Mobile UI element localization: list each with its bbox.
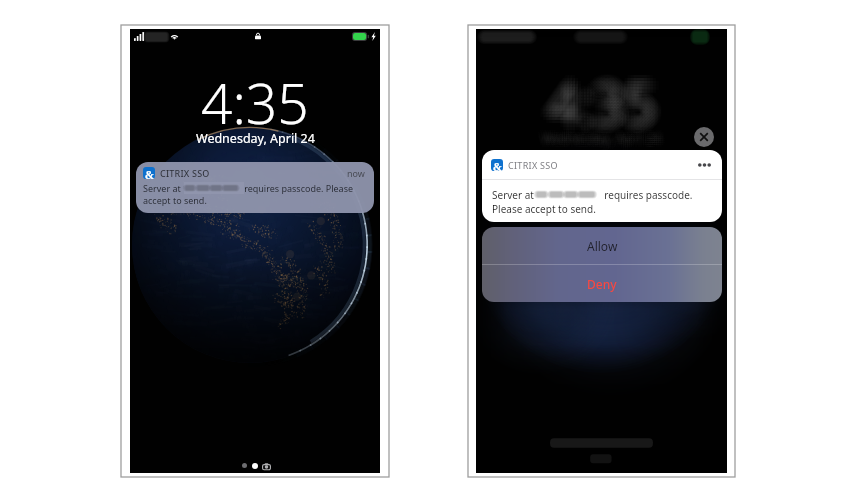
button[interactable]: & xyxy=(136,162,374,213)
staticText: Wednesday, April 24 xyxy=(538,130,657,147)
staticText: 4:35 xyxy=(554,71,662,146)
staticText: Wednesday, April 24 xyxy=(544,132,663,149)
staticText: Wednesday, April 24 xyxy=(544,134,663,151)
staticText: 4:35 xyxy=(542,71,650,146)
staticText: Wednesday, April 24 xyxy=(196,130,315,147)
staticText: 4:35 xyxy=(542,68,650,143)
staticText: 4:35 xyxy=(539,65,647,140)
staticText: CITRIX SSO xyxy=(508,159,558,171)
staticText: 4:35 xyxy=(548,62,656,137)
staticText: 4:35 xyxy=(557,68,665,143)
staticText: & xyxy=(493,159,502,171)
staticText: 4:35 xyxy=(548,71,656,146)
staticText: Wednesday, April 24 xyxy=(546,132,665,149)
staticText: Wednesday, April 24 xyxy=(544,126,663,143)
staticText: 4:35 xyxy=(554,68,662,143)
staticText: Wednesday, April 24 xyxy=(540,132,659,149)
staticText: 4:35 xyxy=(539,62,647,137)
staticText: Deny xyxy=(587,276,617,292)
staticText: Wednesday, April 24 xyxy=(542,128,661,145)
staticText: Wednesday, April 24 xyxy=(546,128,665,145)
staticText: 4:35 xyxy=(551,71,659,146)
staticText: 4:35 xyxy=(548,65,656,140)
button[interactable]: Close xyxy=(694,127,714,147)
staticText: 4:35 xyxy=(545,68,653,143)
staticText: 4:35 xyxy=(542,65,650,140)
staticText: 4:35 xyxy=(548,68,656,143)
staticText: Wednesday, April 24 xyxy=(540,126,659,143)
staticText: 4:35 xyxy=(548,74,656,149)
staticText: 4:35 xyxy=(557,65,665,140)
staticText: Wednesday, April 24 xyxy=(540,134,659,151)
staticText: Wednesday, April 24 xyxy=(542,130,661,147)
button[interactable]: Allow xyxy=(482,227,722,264)
staticText: Wednesday, April 24 xyxy=(542,132,661,149)
staticText: 4:35 xyxy=(542,62,650,137)
staticText: 4:35 xyxy=(548,59,656,134)
staticText: Please accept to send. xyxy=(492,202,596,216)
staticText: Server at 10.102.39.224 requires passcod… xyxy=(143,182,354,194)
staticText: 4:35 xyxy=(551,62,659,137)
staticText: & xyxy=(145,167,154,179)
staticText: 4:35 xyxy=(554,65,662,140)
staticText: 4:35 xyxy=(551,56,659,131)
staticText: Wednesday, April 24 xyxy=(542,126,661,143)
staticText: 4:35 xyxy=(201,65,309,140)
staticText: 4:35 xyxy=(545,59,653,134)
staticText: 4:35 xyxy=(545,74,653,149)
staticText: 4:35 xyxy=(554,62,662,137)
staticText: 4:35 xyxy=(548,56,656,131)
button[interactable]: Deny xyxy=(482,265,722,302)
staticText: 4:35 xyxy=(545,56,653,131)
staticText: CITRIX SSO xyxy=(160,167,210,179)
staticText: Wednesday, April 24 xyxy=(542,134,661,151)
other: Camera xyxy=(262,463,271,470)
staticText: 4:35 xyxy=(551,59,659,134)
staticText: Wednesday, April 24 xyxy=(540,130,659,147)
staticText: 4:35 xyxy=(545,65,653,140)
staticText: 4:35 xyxy=(539,68,647,143)
staticText: Wednesday, April 24 xyxy=(538,128,657,145)
staticText: 4:35 xyxy=(545,71,653,146)
staticText: now xyxy=(347,167,365,179)
staticText: 4:35 xyxy=(551,74,659,149)
staticText: 4:35 xyxy=(542,59,650,134)
staticText: 4:35 xyxy=(545,62,653,137)
staticText: 4:35 xyxy=(551,68,659,143)
staticText: Wednesday, April 24 xyxy=(540,128,659,145)
button[interactable]: & xyxy=(482,150,722,222)
staticText: accept to send. xyxy=(143,194,207,206)
staticText: 4:35 xyxy=(551,65,659,140)
staticText: 4:35 xyxy=(554,59,662,134)
staticText: Wednesday, April 24 xyxy=(546,130,665,147)
staticText: Wednesday, April 24 xyxy=(544,128,663,145)
staticText: Allow xyxy=(587,238,618,254)
staticText: Wednesday, April 24 xyxy=(538,132,657,149)
staticText: 4:35 xyxy=(557,62,665,137)
staticText: Server at 10.102.39.224 requires passcod… xyxy=(492,188,693,202)
staticText: Wednesday, April 24 xyxy=(544,130,663,147)
